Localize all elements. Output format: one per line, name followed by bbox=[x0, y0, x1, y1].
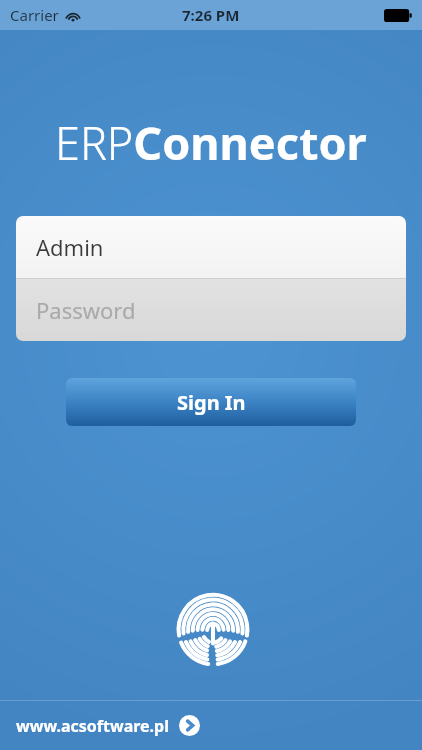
button[interactable]: Sign in with fingerprint bbox=[176, 594, 250, 668]
button[interactable]: Password bbox=[16, 279, 406, 341]
button[interactable]: Sign In bbox=[66, 378, 356, 426]
staticText: Sign In bbox=[177, 389, 246, 416]
button[interactable]: Admin bbox=[16, 216, 406, 278]
staticText: 7:26 PM bbox=[182, 5, 240, 25]
staticText: www.acsoftware.pl bbox=[16, 715, 169, 737]
button[interactable]: www.acsoftware.pl bbox=[0, 701, 422, 750]
staticText: ERPConnector bbox=[55, 112, 367, 173]
staticText: Admin bbox=[36, 232, 104, 262]
staticText: Carrier bbox=[10, 5, 59, 25]
staticText: Password bbox=[36, 295, 136, 325]
